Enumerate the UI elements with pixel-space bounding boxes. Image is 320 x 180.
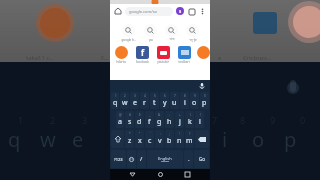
staticText: r: [143, 98, 146, 108]
button[interactable]: 5: [150, 92, 159, 109]
staticText: 8: [184, 94, 186, 98]
staticText: p: [202, 98, 207, 108]
button[interactable]: *: [125, 130, 134, 148]
staticText: l: [199, 117, 201, 127]
staticText: ): [200, 113, 201, 117]
button[interactable]: &: [155, 111, 164, 128]
staticText: 9: [194, 94, 196, 98]
staticText: i: [184, 98, 186, 108]
button[interactable]: !: [175, 130, 184, 148]
staticText: d: [137, 117, 142, 127]
staticText: pa: [149, 38, 153, 42]
staticText: w: [40, 126, 56, 153]
staticText: o: [252, 126, 265, 153]
button[interactable]: Recent apps: [182, 169, 193, 180]
staticText: google h..: [121, 38, 136, 42]
button[interactable]: ;: [165, 130, 174, 148]
button[interactable]: youtube: [155, 46, 171, 64]
button[interactable]: Home: [155, 169, 166, 180]
staticText: e: [218, 54, 222, 62]
button[interactable]: .: [184, 150, 193, 168]
button[interactable]: Emoji: [127, 150, 136, 168]
button[interactable]: Backspace: [195, 130, 209, 148]
button[interactable]: 4: [140, 92, 149, 109]
button[interactable]: Home: [113, 6, 123, 16]
button[interactable]: ': [145, 130, 154, 148]
button[interactable]: 9: [190, 92, 199, 109]
button[interactable]: Back: [127, 169, 138, 180]
button[interactable]: 7: [170, 92, 179, 109]
button[interactable]: 2: [120, 92, 129, 109]
staticText: f: [148, 117, 151, 127]
staticText: 5: [154, 94, 156, 98]
staticText: 1: [18, 114, 24, 126]
button[interactable]: Tabs: [187, 7, 196, 16]
staticText: ?: [189, 132, 191, 136]
button[interactable]: 1: [111, 92, 119, 109]
staticText: 2: [124, 94, 126, 98]
button[interactable]: ব্যাংক: [165, 24, 178, 41]
staticText: google.com/so: [129, 9, 158, 14]
staticText: g: [157, 117, 162, 127]
staticText: taka11 c...: [26, 54, 55, 62]
staticText: English: [158, 156, 172, 161]
button[interactable]: google h..: [121, 24, 136, 42]
button[interactable]: 8: [180, 92, 189, 109]
staticText: 7: [174, 94, 176, 98]
staticText: hilorta: [116, 60, 126, 64]
button[interactable]: @: [116, 111, 124, 128]
staticText: c: [148, 136, 152, 146]
button[interactable]: 6: [160, 92, 169, 109]
button[interactable]: ?: [185, 130, 194, 148]
button[interactable]: ": [135, 130, 144, 148]
button[interactable]: ): [195, 111, 204, 128]
button[interactable]: Go: [194, 150, 209, 168]
staticText: e: [133, 98, 137, 108]
staticText: .: [188, 155, 190, 163]
button[interactable]: Space: [147, 150, 183, 168]
staticText: 1: [115, 94, 117, 98]
button[interactable]: $: [135, 111, 144, 128]
button[interactable]: pa: [144, 24, 157, 42]
button[interactable]: Voice input: [198, 82, 206, 90]
button[interactable]: hilorta: [113, 46, 129, 64]
button[interactable]: /: [137, 150, 146, 168]
button[interactable]: অনু খুঁজ: [186, 24, 199, 42]
button[interactable]: -: [165, 111, 174, 128]
staticText: 2: [50, 114, 56, 126]
staticText: 0: [300, 114, 306, 126]
button[interactable]: (: [185, 111, 194, 128]
staticText: q: [8, 126, 21, 153]
staticText: a: [118, 117, 122, 127]
staticText: e: [72, 126, 84, 153]
button[interactable]: f: [134, 46, 150, 64]
staticText: Go: [199, 156, 205, 162]
button[interactable]: ?123: [111, 150, 126, 168]
button[interactable]: 3: [130, 92, 139, 109]
staticText: 3: [134, 94, 136, 98]
button[interactable]: More options: [198, 7, 207, 16]
staticText: /: [140, 155, 143, 163]
staticText: h: [167, 117, 172, 127]
button[interactable]: Account: [176, 7, 184, 15]
staticText: অনু খুঁজ: [189, 38, 197, 42]
button[interactable]: google.com/so: [125, 7, 173, 16]
button[interactable]: 0: [200, 92, 209, 109]
button[interactable]: #: [125, 111, 134, 128]
staticText: ": [139, 132, 141, 136]
staticText: 6: [164, 94, 166, 98]
button[interactable]: +: [175, 111, 184, 128]
staticText: +: [179, 113, 181, 117]
staticText: 3: [82, 114, 88, 126]
staticText: v: [158, 136, 162, 146]
staticText: n: [177, 136, 182, 146]
button[interactable]: [197, 46, 210, 64]
button[interactable]: _: [145, 111, 154, 128]
staticText: facebook: [136, 60, 149, 64]
button[interactable]: Shift: [111, 130, 124, 148]
staticText: f: [141, 47, 145, 58]
button[interactable]: toolbari: [176, 46, 192, 64]
staticText: $: [139, 113, 141, 117]
staticText: -: [169, 113, 170, 117]
button[interactable]: :: [155, 130, 164, 148]
